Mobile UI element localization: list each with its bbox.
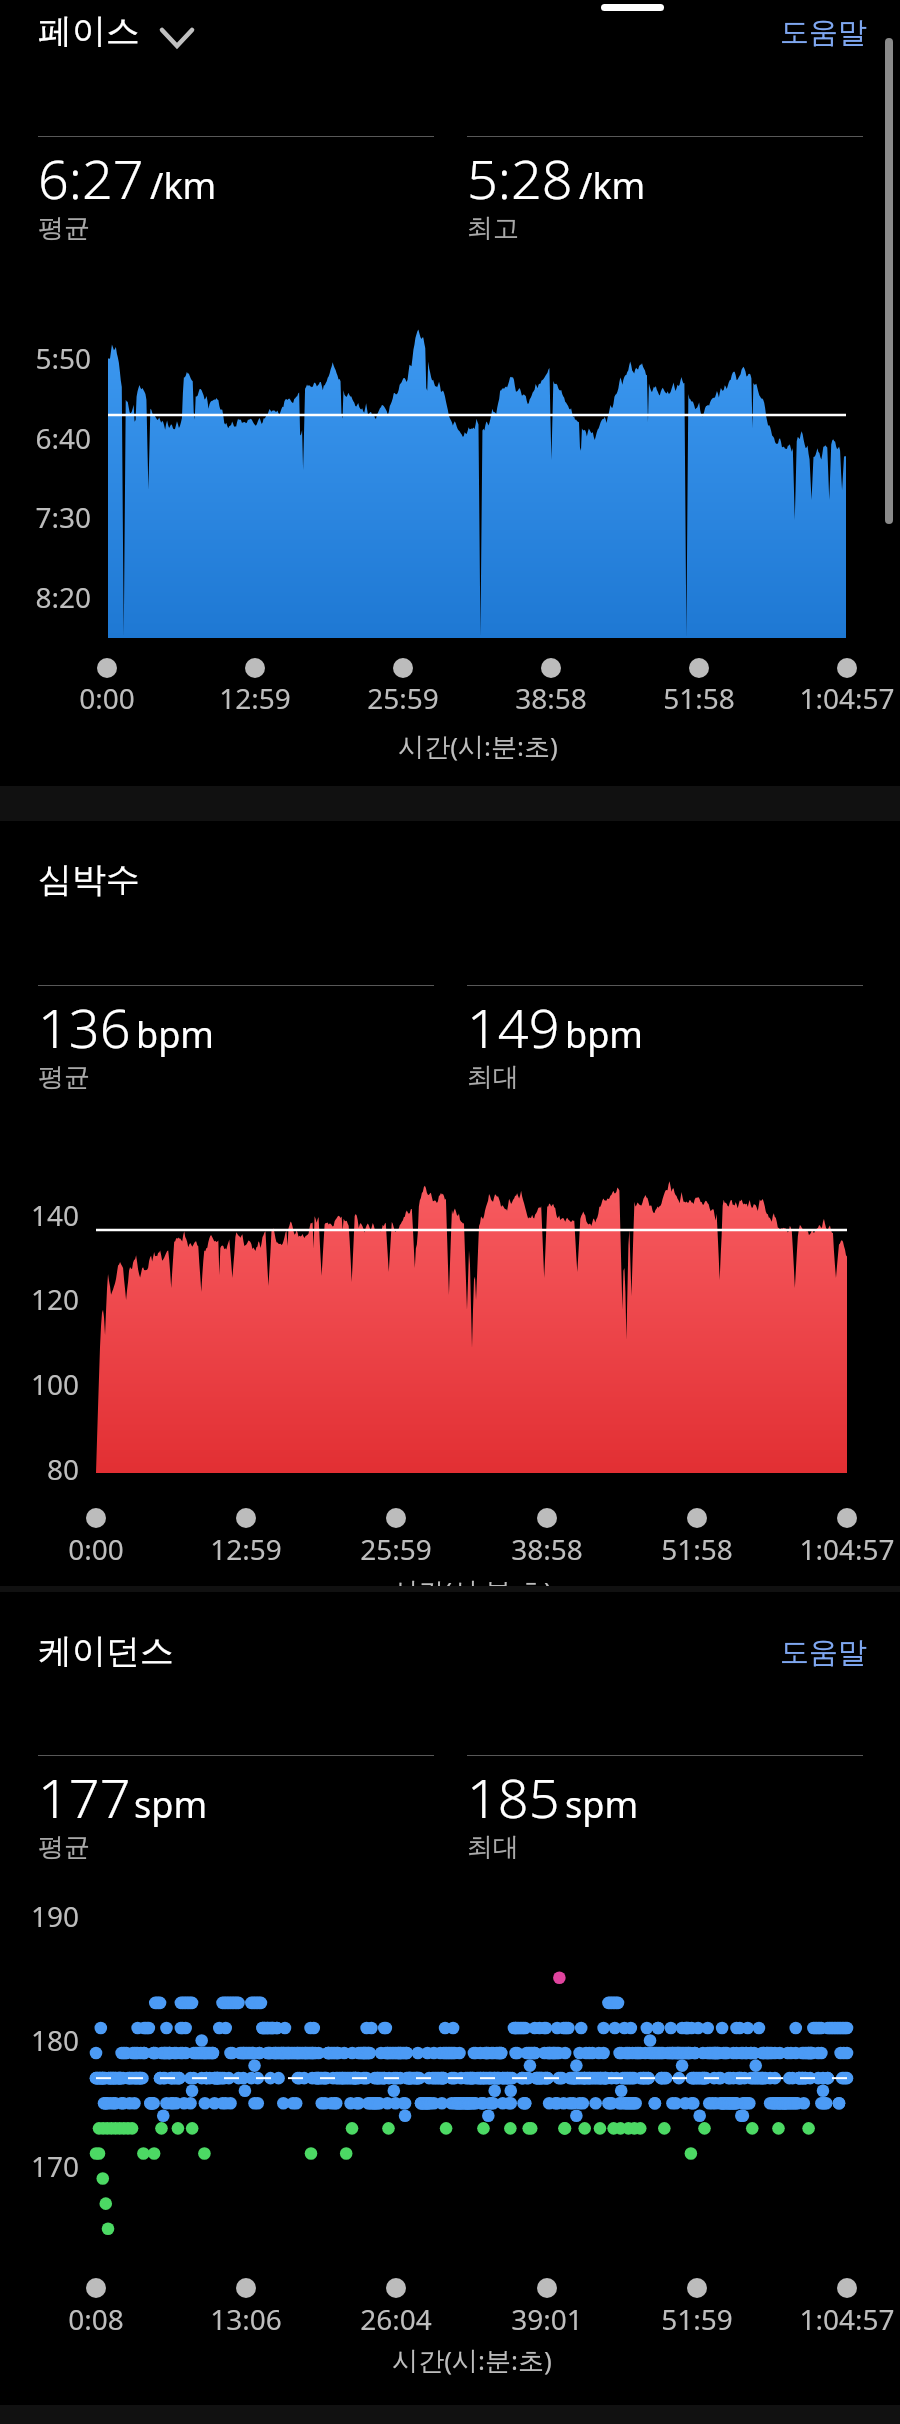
staticText: /km — [150, 161, 217, 210]
staticText: 최대 — [467, 1831, 519, 1864]
staticText: 시간(시:분:초) — [272, 1573, 672, 1587]
staticText: 1:04:57 — [737, 1530, 900, 1568]
staticText: 12:59 — [136, 1530, 356, 1568]
staticText: 7:30 — [0, 498, 91, 536]
staticText: 5:28 — [467, 141, 573, 215]
staticText: 120 — [0, 1280, 79, 1318]
staticText: 26:04 — [286, 2300, 506, 2338]
staticText: 심박수 — [38, 858, 140, 901]
staticText: bpm — [136, 1010, 214, 1059]
staticText: 최고 — [467, 212, 519, 245]
button[interactable]: 케이던스 — [26, 1620, 162, 1663]
staticText: 시간(시:분:초) — [278, 728, 678, 764]
staticText: 38:58 — [437, 1530, 657, 1568]
staticText: 149 — [467, 990, 560, 1064]
staticText: 170 — [0, 2147, 79, 2185]
staticText: 51:58 — [587, 1530, 807, 1568]
staticText: 도움말 — [780, 14, 867, 51]
staticText: 136 — [38, 990, 131, 1064]
staticText: 100 — [0, 1365, 79, 1403]
staticText: 6:40 — [0, 419, 91, 457]
staticText: 190 — [0, 1897, 79, 1935]
staticText: 25:59 — [293, 679, 513, 717]
staticText: 5:50 — [0, 339, 91, 377]
staticText: 도움말 — [780, 1634, 867, 1671]
staticText: 0:08 — [0, 2300, 206, 2338]
staticText: 1:04:57 — [737, 679, 900, 717]
staticText: 시간(시:분:초) — [272, 2342, 672, 2378]
staticText: 51:59 — [587, 2300, 807, 2338]
staticText: 180 — [0, 2021, 79, 2059]
button[interactable]: 도움말 — [768, 4, 855, 41]
staticText: 140 — [0, 1196, 79, 1234]
staticText: 25:59 — [286, 1530, 506, 1568]
staticText: 최대 — [467, 1061, 519, 1094]
staticText: 51:58 — [589, 679, 809, 717]
staticText: 6:27 — [38, 141, 144, 215]
staticText: 38:58 — [441, 679, 661, 717]
staticText: 0:00 — [0, 1530, 206, 1568]
staticText: 80 — [0, 1450, 79, 1488]
staticText: 평균 — [38, 1061, 90, 1094]
staticText: bpm — [565, 1010, 643, 1059]
staticText: 1:04:57 — [737, 2300, 900, 2338]
staticText: 평균 — [38, 1831, 90, 1864]
staticText: 0:00 — [0, 679, 217, 717]
button[interactable]: 페이스 — [26, 0, 128, 43]
staticText: 185 — [467, 1760, 560, 1834]
staticText: 13:06 — [136, 2300, 356, 2338]
staticText: 12:59 — [145, 679, 365, 717]
button[interactable]: Expand pace — [150, 12, 202, 58]
staticText: 케이던스 — [38, 1630, 174, 1673]
staticText: 39:01 — [437, 2300, 657, 2338]
staticText: spm — [565, 1780, 639, 1829]
button[interactable]: 심박수 — [26, 848, 128, 891]
staticText: 8:20 — [0, 578, 91, 616]
staticText: /km — [579, 161, 646, 210]
button[interactable]: 도움말 — [768, 1624, 855, 1661]
staticText: 페이스 — [38, 10, 140, 53]
staticText: 평균 — [38, 212, 90, 245]
staticText: spm — [134, 1780, 208, 1829]
staticText: 177 — [38, 1760, 131, 1834]
